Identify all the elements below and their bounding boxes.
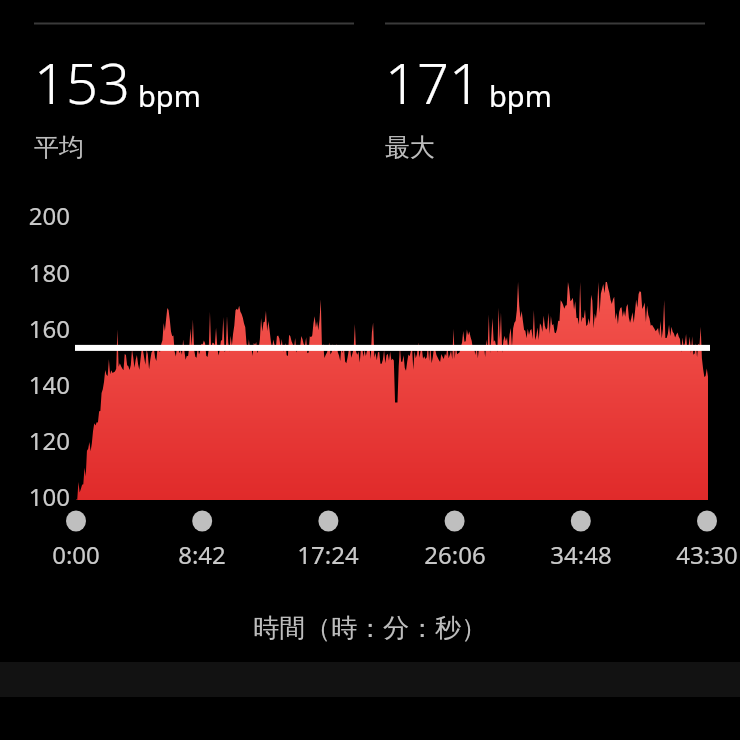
staticText: bpm [489,76,552,115]
staticText: 140 [22,368,70,401]
staticText: 最大 [385,132,435,163]
staticText: 100 [22,480,70,513]
button[interactable]: 153 [34,44,364,163]
staticText: 0:00 [21,538,131,571]
staticText: 171 [385,44,481,120]
staticText: 時間（時：分：秒） [0,612,740,645]
staticText: 160 [22,312,70,345]
staticText: 34:48 [526,538,636,571]
staticText: bpm [138,76,201,115]
staticText: 43:30 [652,538,740,571]
staticText: 120 [22,424,70,457]
staticText: 17:24 [273,538,383,571]
button[interactable]: 171 [385,44,715,163]
staticText: 153 [34,44,130,120]
staticText: 200 [22,199,70,232]
staticText: 8:42 [147,538,257,571]
staticText: 26:06 [400,538,510,571]
staticText: 平均 [34,132,84,163]
staticText: 180 [22,256,70,289]
